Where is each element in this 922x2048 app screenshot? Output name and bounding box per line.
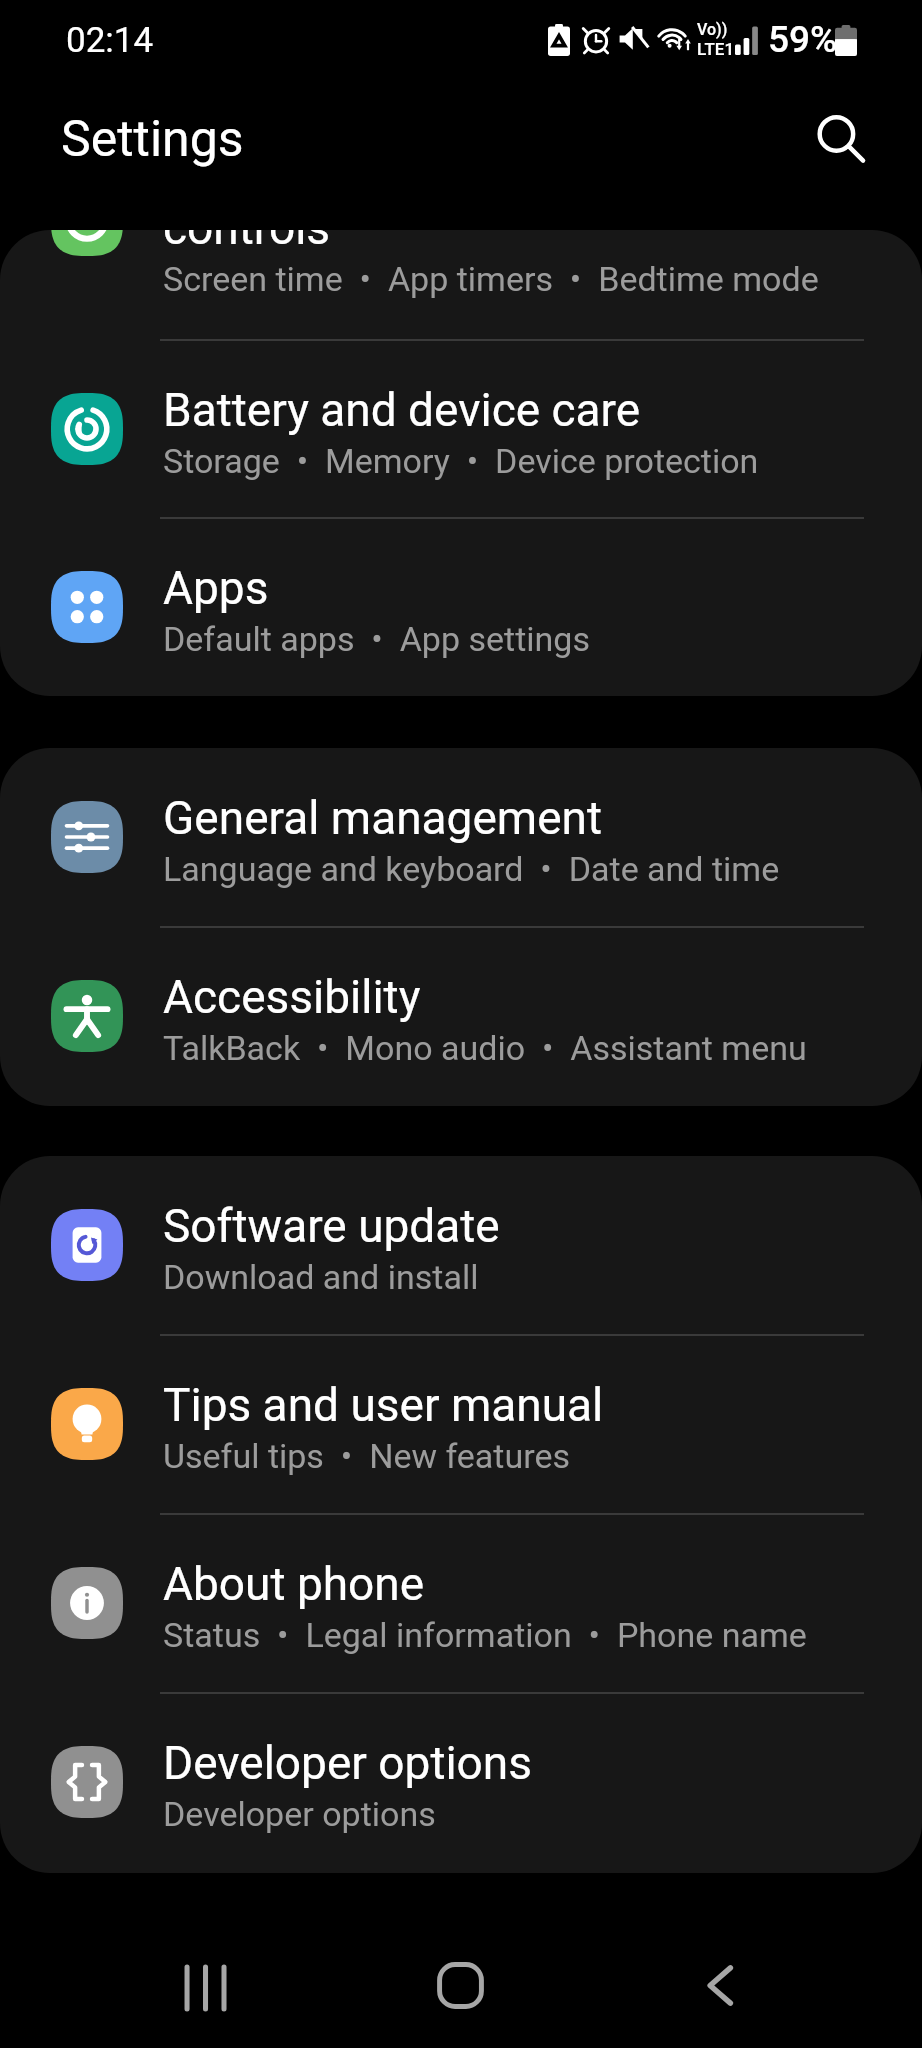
staticText: TalkBack • Mono audio • Assistant menu — [163, 1028, 807, 1068]
button[interactable]: Home — [358, 1873, 563, 2048]
button[interactable]: Search — [792, 92, 892, 192]
button[interactable]: Accessibility — [0, 927, 922, 1105]
button[interactable]: Battery and device care — [0, 340, 922, 518]
button[interactable]: About phone — [0, 1514, 922, 1692]
staticText: General management — [163, 791, 603, 845]
staticText: Developer options — [163, 1794, 436, 1834]
staticText: Settings — [61, 110, 244, 169]
staticText: Apps — [163, 561, 269, 615]
staticText: Accessibility — [163, 970, 421, 1024]
staticText: Tips and user manual — [163, 1378, 604, 1432]
button[interactable]: Tips and user manual — [0, 1335, 922, 1513]
staticText: Battery and device care — [163, 383, 641, 437]
staticText: Storage • Memory • Device protection — [163, 441, 759, 481]
button[interactable]: Digital Wellbeing and parental controls — [0, 230, 922, 339]
staticText: Developer options — [163, 1736, 532, 1790]
button[interactable]: Apps — [0, 518, 922, 696]
staticText: Useful tips • New features — [163, 1436, 570, 1476]
staticText: Download and install — [163, 1257, 479, 1297]
button[interactable]: Software update — [0, 1156, 922, 1334]
staticText: Screen time • App timers • Bedtime mode — [163, 259, 819, 299]
button[interactable]: Recent apps — [100, 1873, 305, 2048]
staticText: Default apps • App settings — [163, 619, 590, 659]
staticText: About phone — [163, 1557, 425, 1611]
staticText: 59% — [768, 18, 838, 61]
button[interactable]: General management — [0, 748, 922, 926]
staticText: Vo)) — [697, 20, 728, 39]
staticText: Software update — [163, 1199, 500, 1253]
staticText: 02:14 — [66, 20, 154, 61]
staticText: LTE1 — [697, 39, 735, 59]
staticText: Digital Wellbeing and parental controls — [163, 230, 770, 255]
button[interactable]: Developer options — [0, 1693, 922, 1871]
staticText: Status • Legal information • Phone name — [163, 1615, 807, 1655]
staticText: Language and keyboard • Date and time — [163, 849, 780, 889]
button[interactable]: Back — [617, 1873, 822, 2048]
